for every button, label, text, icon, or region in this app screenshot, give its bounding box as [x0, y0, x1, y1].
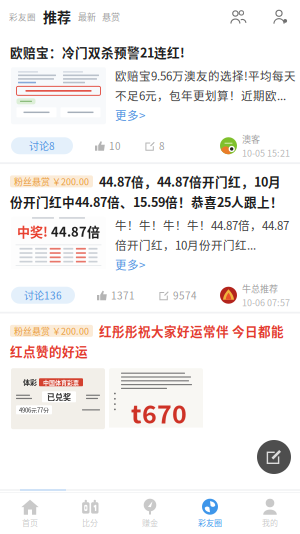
staticText: 欧赔宝：冷门双杀预警21连红!	[10, 43, 185, 61]
button[interactable]: 讨论136	[11, 287, 75, 304]
button[interactable]: 更多>	[115, 256, 145, 273]
staticText: 44.87倍	[51, 222, 100, 240]
button[interactable]: 我的主页	[256, 0, 300, 33]
staticText: 红彤彤祝大家好运常伴 今日都能	[99, 322, 284, 340]
button[interactable]: 更多>	[115, 106, 145, 123]
button[interactable]: 10	[73, 130, 121, 161]
staticText: 8	[159, 138, 165, 153]
button[interactable]: 彩友圈	[0, 1, 38, 31]
button[interactable]: 好友	[220, 0, 256, 34]
staticText: 悬赏	[102, 10, 120, 23]
button[interactable]: 澳客	[220, 132, 290, 159]
button[interactable]	[11, 67, 106, 124]
staticText: 1371	[111, 288, 135, 302]
button[interactable]: 9574	[135, 280, 197, 310]
staticText: 粉丝悬赏 ￥200.00	[14, 324, 89, 337]
staticText: 最新	[78, 10, 96, 23]
staticText: 牛！牛！牛！牛！44.87倍，44.87	[115, 217, 289, 233]
staticText: 9574	[173, 288, 197, 302]
button[interactable]: 粉丝悬赏 ￥200.00	[0, 164, 283, 211]
button[interactable]: 1371	[75, 280, 135, 310]
button[interactable]: 8	[121, 130, 165, 161]
button[interactable]: 我的	[240, 493, 300, 534]
staticText: 已兑奖	[47, 391, 71, 403]
button[interactable]: 悬赏	[98, 1, 120, 31]
staticText: 更多>	[115, 256, 145, 273]
button[interactable]: 讨论8	[11, 137, 73, 154]
button[interactable]: 牛总推荐	[220, 282, 290, 309]
staticText: 首页	[22, 517, 38, 528]
staticText: 更多>	[115, 106, 145, 123]
button[interactable]: 首页	[0, 493, 60, 534]
staticText: 比分	[82, 517, 98, 528]
staticText: 讨论8	[29, 138, 55, 153]
staticText: 10-05 15:21	[242, 146, 290, 159]
staticText: 推荐	[43, 6, 71, 27]
staticText: 欧赔宝9.56万澳友的选择!平均每天	[115, 67, 296, 84]
button[interactable]: 赚金	[120, 493, 180, 534]
button[interactable]: 图片1	[11, 368, 105, 429]
staticText: 份开门红中44.87倍、15.59倍！恭喜25人跟上！	[10, 192, 283, 211]
button[interactable]: 粉丝悬赏 ￥200.00	[0, 314, 284, 360]
staticText: t670	[131, 395, 187, 431]
button[interactable]: 欧赔宝：冷门双杀预警21连红!	[0, 33, 185, 61]
button[interactable]: 推荐	[38, 1, 74, 31]
staticText: 彩友圈	[198, 517, 222, 528]
button[interactable]: 比分	[60, 493, 120, 534]
button[interactable]: 中奖!	[11, 217, 106, 274]
staticText: 10-06 07:57	[242, 296, 290, 309]
staticText: 中奖!	[17, 222, 48, 240]
staticText: 澳客	[242, 132, 260, 145]
staticText: 彩友圈	[9, 10, 36, 23]
staticText: 倍开门红，10月份开门红...	[115, 236, 256, 253]
staticText: 我的	[262, 517, 278, 528]
staticText: 讨论136	[24, 288, 62, 302]
staticText: 不足6元，包年更划算！近期欧...	[115, 87, 286, 104]
button[interactable]: 发帖	[257, 440, 291, 474]
staticText: 红点赞的好运	[10, 342, 88, 360]
staticText: 体彩	[23, 377, 37, 387]
button[interactable]: 图片2	[109, 368, 203, 429]
staticText: 牛总推荐	[242, 282, 278, 295]
staticText: 赚金	[142, 517, 158, 528]
staticText: 10	[109, 138, 121, 153]
staticText: 44.87倍，44.87倍开门红，10月	[99, 172, 281, 190]
staticText: 中国体育彩票	[43, 378, 79, 387]
button[interactable]: 彩友圈	[180, 493, 240, 534]
staticText: 粉丝悬赏 ￥200.00	[14, 175, 89, 188]
staticText: 4906元77分	[19, 405, 49, 414]
button[interactable]: 最新	[74, 1, 98, 31]
